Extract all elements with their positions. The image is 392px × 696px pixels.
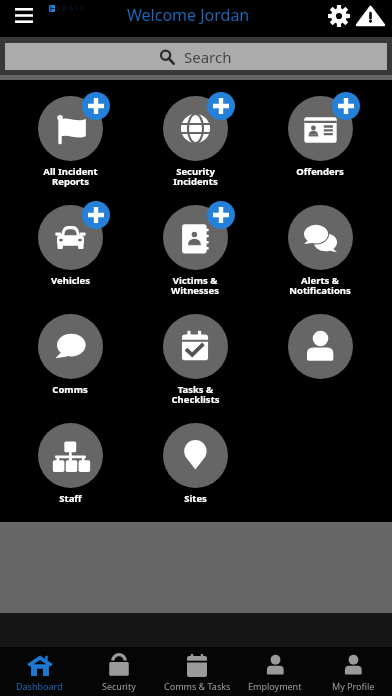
- staticText: Tasks & Checklists: [171, 383, 220, 406]
- button[interactable]: All Incident Reports: [22, 96, 118, 205]
- button[interactable]: Victims & Witnesses: [147, 205, 243, 314]
- staticText: Welcome Jordan: [127, 4, 250, 26]
- button[interactable]: [272, 314, 368, 423]
- button[interactable]: Employment: [236, 647, 314, 696]
- button[interactable]: Security Incidents: [147, 96, 243, 205]
- staticText: Vehicles: [51, 274, 90, 287]
- button[interactable]: Offenders: [272, 96, 368, 205]
- staticText: Staff: [59, 492, 82, 505]
- staticText: Dashboard: [16, 680, 63, 692]
- staticText: Comms & Tasks: [164, 680, 231, 692]
- staticText: Offenders: [296, 165, 344, 178]
- button[interactable]: Dashboard: [0, 647, 79, 696]
- button[interactable]: Sites: [147, 423, 243, 522]
- staticText: My Profile: [332, 680, 375, 692]
- button[interactable]: Security: [79, 647, 158, 696]
- staticText: All Incident Reports: [43, 165, 98, 188]
- button[interactable]: Menu: [8, 1, 39, 30]
- staticText: LOGIC: [57, 4, 86, 11]
- button[interactable]: My Profile: [314, 647, 392, 696]
- staticText: Security: [102, 680, 136, 692]
- button[interactable]: Staff: [22, 423, 118, 522]
- button[interactable]: Search: [5, 43, 387, 70]
- staticText: Sites: [184, 492, 207, 505]
- button[interactable]: Comms: [22, 314, 118, 423]
- staticText: Comms: [52, 383, 88, 396]
- staticText: Victims & Witnesses: [171, 274, 219, 297]
- button[interactable]: Comms & Tasks: [158, 647, 236, 696]
- button[interactable]: Alerts: [355, 1, 385, 30]
- staticText: Security Incidents: [173, 165, 218, 188]
- button[interactable]: Tasks & Checklists: [147, 314, 243, 423]
- staticText: Employment: [248, 680, 302, 692]
- button[interactable]: Alerts & Notifications: [272, 205, 368, 314]
- button[interactable]: Settings: [324, 1, 354, 30]
- button[interactable]: Vehicles: [22, 205, 118, 314]
- staticText: Search: [184, 47, 232, 67]
- staticText: Alerts & Notifications: [289, 274, 351, 297]
